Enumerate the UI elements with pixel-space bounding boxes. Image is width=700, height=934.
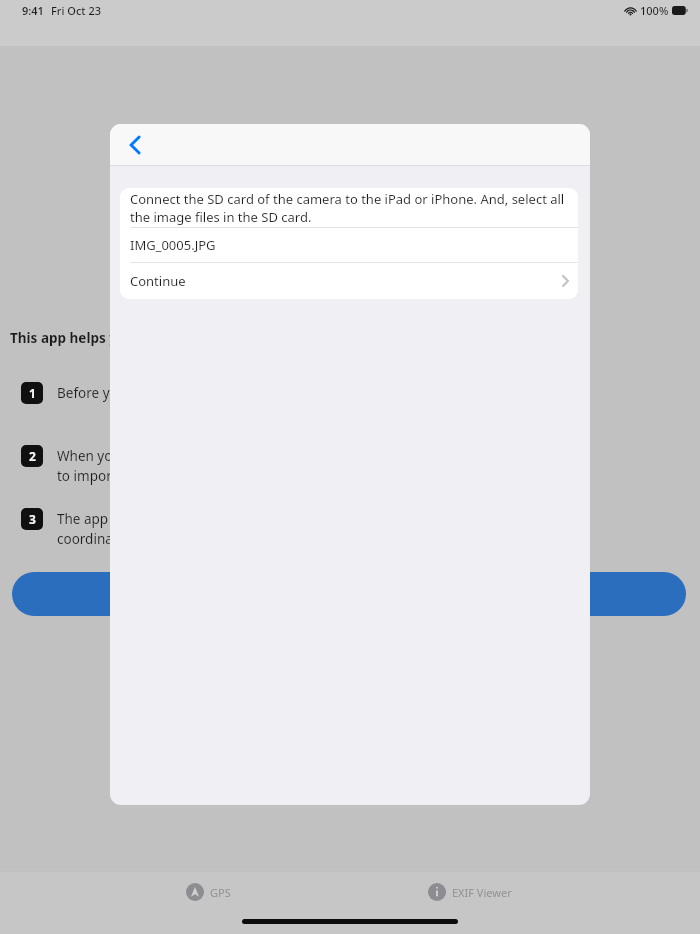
button[interactable]: Back	[113, 124, 157, 166]
staticText: Continue	[130, 272, 186, 290]
button[interactable]: Continue	[120, 263, 578, 299]
button[interactable]: Connect the SD card of the camera to the…	[120, 188, 578, 227]
staticText: GPS	[210, 885, 231, 900]
staticText: 3	[29, 511, 36, 527]
staticText: 100%	[640, 3, 669, 18]
staticText: EXIF Viewer	[452, 885, 512, 900]
staticText: Before you start, connect the SD card of…	[57, 384, 475, 402]
staticText: 9:41	[22, 3, 44, 18]
button[interactable]: EXIF Viewer	[428, 877, 538, 907]
staticText: When you tap the "Start" button below, y…	[57, 447, 477, 485]
staticText: This app helps you to add the GPS coordi…	[10, 329, 426, 347]
button[interactable]: IMG_0005.JPG	[120, 228, 578, 262]
button[interactable]: GPS	[160, 877, 256, 907]
button[interactable]: Start	[12, 572, 686, 616]
staticText: Connect the SD card of the camera to the…	[130, 190, 568, 226]
staticText: The app will read the EXIF data of the p…	[57, 510, 456, 548]
staticText: IMG_0005.JPG	[130, 236, 216, 254]
staticText: 2	[29, 448, 36, 464]
staticText: Fri Oct 23	[51, 3, 101, 18]
staticText: 1	[29, 385, 36, 401]
